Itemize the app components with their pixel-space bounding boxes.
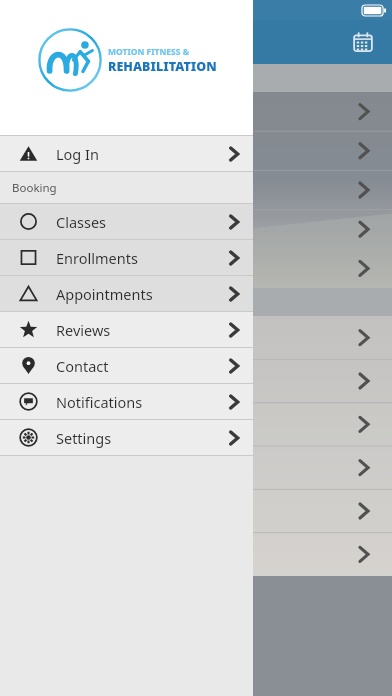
button[interactable]: Calendar [348, 27, 378, 57]
staticText: Settings [56, 428, 217, 448]
staticText: Contact [56, 356, 217, 376]
button[interactable]: Contact [0, 348, 253, 383]
staticText: Enrollments [56, 248, 217, 268]
staticText: SEPTEMBER 11 [10, 293, 103, 311]
button[interactable]: Enrollments [0, 240, 253, 275]
staticText: Classes [56, 212, 217, 232]
staticText: Notifications [56, 392, 217, 412]
staticText: SEPTEMBER 10 [10, 69, 103, 87]
button[interactable]: Notifications [0, 384, 253, 419]
staticText: REHABILITATION [108, 58, 217, 75]
staticText: Appointments [56, 284, 217, 304]
staticText: MOTION FITNESS & [108, 46, 190, 58]
button[interactable]: Settings [0, 420, 253, 455]
button[interactable]: Appointments [0, 276, 253, 311]
staticText: Log In [56, 144, 217, 164]
staticText: Reviews [56, 320, 217, 340]
staticText: Booking [12, 180, 57, 196]
button[interactable]: Classes [0, 204, 253, 239]
button[interactable]: Reviews [0, 312, 253, 347]
button[interactable]: Log In [0, 136, 253, 171]
